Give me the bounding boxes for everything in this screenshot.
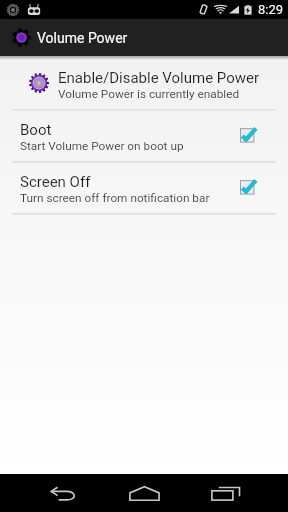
button[interactable]: Boot: [234, 120, 264, 150]
staticText: Boot: [20, 121, 52, 139]
staticText: Screen Off: [20, 173, 91, 191]
staticText: Turn screen off from notification bar: [20, 191, 210, 205]
staticText: Enable/Disable Volume Power: [58, 69, 260, 87]
staticText: Volume Power: [37, 30, 128, 46]
staticText: Volume Power is currently enabled: [58, 87, 240, 101]
button[interactable]: Screen Off: [234, 172, 264, 202]
button[interactable]: Recent apps: [204, 479, 247, 507]
staticText: Start Volume Power on boot up: [20, 139, 184, 153]
button[interactable]: Home: [123, 479, 166, 507]
staticText: 8:29: [258, 2, 284, 17]
button[interactable]: Volume Power: [0, 19, 288, 56]
button[interactable]: Boot: [0, 111, 288, 161]
button[interactable]: Back: [42, 479, 85, 507]
button[interactable]: Screen Off: [0, 163, 288, 213]
button[interactable]: Enable/Disable Volume Power: [0, 56, 288, 109]
